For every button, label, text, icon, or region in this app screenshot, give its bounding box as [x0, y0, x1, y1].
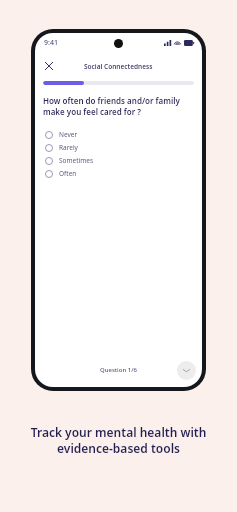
button[interactable]: Close	[40, 57, 58, 75]
button[interactable]: Often	[35, 167, 202, 180]
button[interactable]: Rarely	[35, 141, 202, 154]
button[interactable]: Next question	[177, 361, 196, 380]
button[interactable]: Sometimes	[35, 154, 202, 167]
button[interactable]: Never	[35, 128, 202, 141]
staticText: Track your mental health with evidence-b…	[0, 424, 237, 457]
staticText: Never	[59, 130, 78, 139]
staticText: How often do friends and/or family make …	[43, 95, 194, 118]
staticText: Question 1/6	[100, 366, 137, 374]
staticText: Sometimes	[59, 156, 94, 165]
staticText: Rarely	[59, 143, 78, 152]
staticText: Often	[59, 169, 77, 178]
staticText: 9:41	[44, 38, 58, 48]
staticText: Social Connectedness	[84, 62, 153, 71]
